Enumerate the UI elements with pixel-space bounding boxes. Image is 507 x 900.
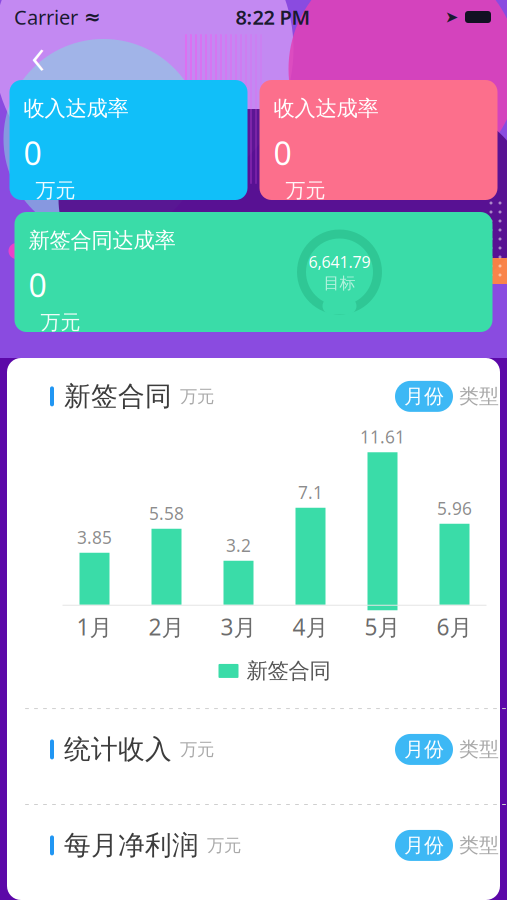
staticText: 新签合同 (246, 658, 330, 684)
staticText: 新签合同 (64, 380, 172, 413)
staticText: ≈ (84, 6, 101, 28)
staticText: ➤ (445, 8, 458, 26)
staticText: 新签合同达成率 (28, 227, 175, 254)
button[interactable]: 月份 (395, 381, 453, 412)
staticText: 类型 (459, 737, 499, 762)
staticText: 3.2 (226, 534, 251, 557)
staticText: 8:22 PM (235, 4, 310, 30)
staticText: 7.1 (298, 481, 323, 504)
staticText: 11.61 (360, 425, 405, 448)
button[interactable]: 新签合同达成率 (14, 212, 492, 332)
staticText: 月份 (404, 833, 444, 858)
staticText: 万元 (273, 178, 325, 203)
staticText: 5月 (364, 612, 400, 642)
staticText: 2月 (148, 612, 184, 642)
staticText: 万元 (28, 310, 80, 335)
button[interactable]: 月份 (395, 830, 453, 861)
staticText: 收入达成率 (273, 95, 378, 122)
staticText: 3.85 (77, 526, 112, 549)
staticText: 4月 (292, 612, 328, 642)
staticText: 统计收入 (64, 733, 172, 766)
button[interactable]: 收入达成率 (259, 80, 497, 200)
staticText: 0 (28, 264, 46, 306)
staticText: 6,641.79 (308, 251, 370, 272)
button[interactable]: 类型 (453, 830, 505, 861)
staticText: 1月 (76, 612, 112, 642)
staticText: 类型 (459, 833, 499, 858)
button[interactable]: 类型 (453, 381, 505, 412)
staticText: 万元 (23, 178, 75, 203)
staticText: ‹ (31, 19, 45, 89)
staticText: 收入达成率 (23, 95, 128, 122)
staticText: 万元 (180, 386, 214, 407)
staticText: 5.58 (149, 502, 184, 525)
staticText: Carrier (14, 4, 78, 30)
staticText: 每月净利润 (64, 829, 199, 862)
button[interactable]: Back (16, 32, 60, 76)
staticText: 3月 (220, 612, 256, 642)
staticText: 目标 (323, 273, 355, 293)
button[interactable]: 月份 (395, 734, 453, 765)
staticText: 0 (23, 132, 41, 174)
staticText: 月份 (404, 737, 444, 762)
staticText: 6月 (436, 612, 472, 642)
staticText: 月份 (404, 384, 444, 409)
staticText: 类型 (459, 384, 499, 409)
staticText: 5.96 (437, 497, 472, 520)
staticText: 万元 (207, 835, 241, 856)
button[interactable]: 收入达成率 (9, 80, 247, 200)
button[interactable]: 类型 (453, 734, 505, 765)
staticText: 0 (273, 132, 291, 174)
staticText: 万元 (180, 739, 214, 760)
